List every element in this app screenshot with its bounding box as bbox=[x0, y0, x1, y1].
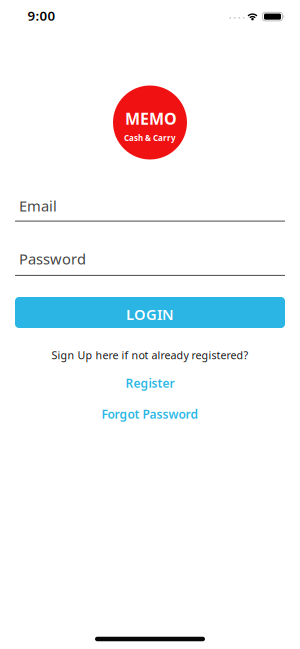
button[interactable]: Email bbox=[15, 191, 285, 221]
button[interactable]: Register bbox=[90, 371, 210, 395]
button[interactable]: LOGIN bbox=[15, 297, 285, 328]
staticText: Email bbox=[19, 196, 57, 215]
staticText: LOGIN bbox=[126, 305, 174, 324]
staticText: Forgot Password bbox=[101, 406, 198, 422]
staticText: Register bbox=[125, 375, 174, 391]
staticText: 9:00 bbox=[27, 7, 55, 24]
button[interactable]: Forgot Password bbox=[70, 402, 230, 426]
staticText: MEMO bbox=[125, 108, 177, 129]
staticText: Password bbox=[19, 249, 86, 269]
staticText: Sign Up here if not already registered? bbox=[51, 348, 248, 362]
button[interactable]: Password bbox=[15, 247, 285, 277]
staticText: Cash & Carry bbox=[124, 133, 176, 143]
